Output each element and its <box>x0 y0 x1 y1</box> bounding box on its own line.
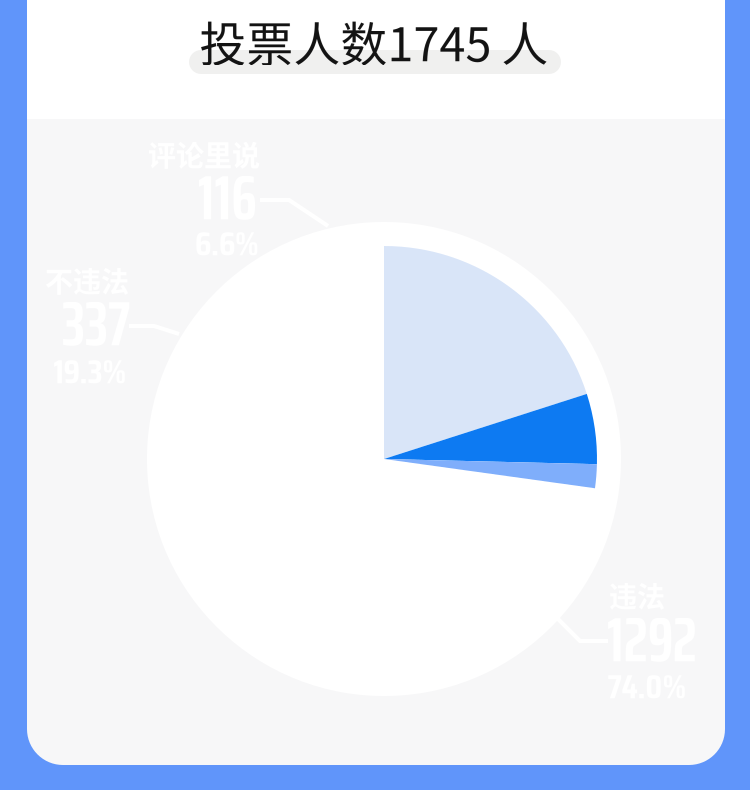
staticText: 投票人数1745 人 <box>199 7 548 75</box>
button[interactable]: 不违法 <box>45 260 129 300</box>
staticText: 337 <box>62 276 130 372</box>
button[interactable]: 337 <box>62 276 130 372</box>
button[interactable]: 6.6% <box>195 219 259 269</box>
button[interactable]: 违法 <box>609 575 665 615</box>
staticText: 不违法 <box>45 260 129 300</box>
button[interactable]: 评论里说 <box>148 134 260 174</box>
button[interactable]: 116 <box>197 150 256 246</box>
staticText: 违法 <box>609 575 665 615</box>
staticText: 评论里说 <box>148 134 260 174</box>
staticText: 1292 <box>607 592 697 688</box>
staticText: 116 <box>197 150 256 246</box>
button[interactable]: 1292 <box>607 592 697 688</box>
staticText: 6.6% <box>195 219 259 269</box>
